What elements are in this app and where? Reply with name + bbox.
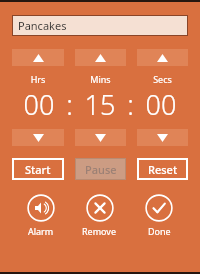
staticText: 00 xyxy=(134,86,188,123)
staticText: 15 xyxy=(73,86,127,123)
staticText: Pause xyxy=(85,162,117,177)
button[interactable]: Pancakes xyxy=(12,15,188,36)
button[interactable]: Start xyxy=(12,158,64,180)
button[interactable]: Decrease Mins xyxy=(75,129,126,146)
button[interactable]: Increase Hrs xyxy=(12,49,64,66)
staticText: Alarm xyxy=(28,225,54,237)
staticText: Start xyxy=(25,162,51,177)
button[interactable]: Increase Mins xyxy=(75,49,126,66)
staticText: Done xyxy=(148,225,171,237)
staticText: : xyxy=(66,86,73,123)
staticText: Remove xyxy=(82,225,117,237)
staticText: 00 xyxy=(12,86,66,123)
button[interactable]: Decrease Hrs xyxy=(12,129,64,146)
staticText: Pancakes xyxy=(18,18,67,33)
button[interactable]: Decrease Secs xyxy=(137,129,188,146)
button[interactable]: Reset xyxy=(137,158,188,180)
staticText: Reset xyxy=(148,162,178,177)
button[interactable]: Increase Secs xyxy=(137,49,188,66)
button[interactable]: Pause xyxy=(75,158,126,180)
button[interactable]: Remove xyxy=(82,194,117,237)
staticText: : xyxy=(127,86,134,123)
staticText: Mins xyxy=(75,73,126,85)
staticText: Hrs xyxy=(12,73,64,85)
staticText: Secs xyxy=(137,73,188,85)
button[interactable]: Done xyxy=(145,194,173,237)
button[interactable]: Alarm xyxy=(27,194,55,237)
